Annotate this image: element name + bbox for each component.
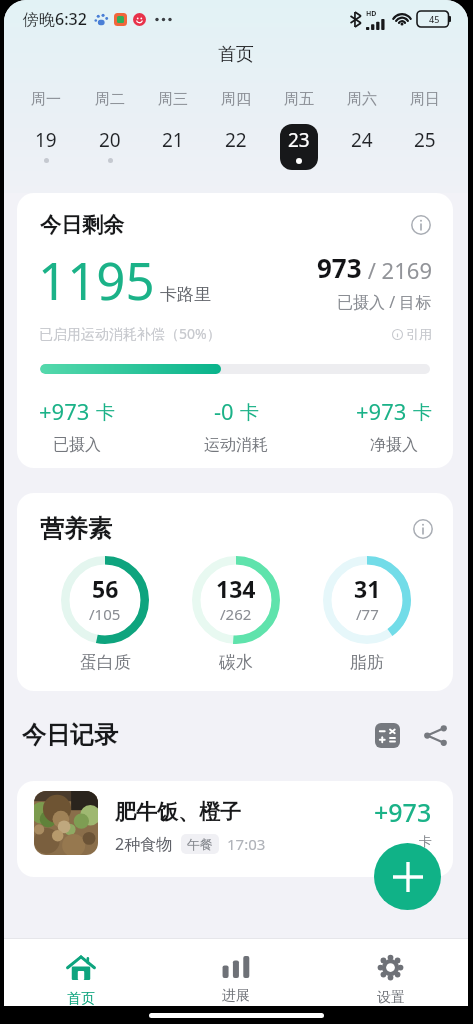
button[interactable]: 周六	[330, 90, 393, 170]
staticText: 周五	[284, 90, 314, 109]
button[interactable]: 今日剩余	[17, 193, 453, 468]
staticText: 引用	[406, 326, 432, 342]
button[interactable]: 设置	[313, 939, 468, 1006]
staticText: 设置	[377, 989, 405, 1006]
button[interactable]: 周二	[78, 90, 141, 170]
staticText: +973	[356, 396, 407, 426]
staticText: 973	[317, 250, 362, 285]
staticText: 56	[92, 573, 119, 604]
button[interactable]: 进展	[158, 939, 313, 1006]
staticText: 25	[414, 127, 436, 153]
staticText: 21	[162, 127, 184, 153]
staticText: 蛋白质	[80, 652, 131, 673]
staticText: 首页	[67, 990, 95, 1006]
button[interactable]: 说明	[410, 516, 436, 542]
staticText: 周六	[347, 90, 377, 109]
staticText: 卡路里	[160, 284, 211, 305]
staticText: 卡	[240, 401, 259, 425]
staticText: 2种食物	[115, 833, 173, 855]
staticText: 运动消耗	[204, 435, 268, 455]
staticText: HD	[366, 9, 377, 19]
staticText: 45	[429, 13, 440, 25]
staticText: 净摄入	[370, 435, 418, 455]
staticText: 周日	[410, 90, 440, 109]
staticText: /262	[220, 604, 252, 624]
staticText: 1195	[38, 245, 155, 314]
button[interactable]: 周一	[14, 90, 78, 170]
staticText: 24	[351, 127, 373, 153]
staticText: 已摄入 / 目标	[337, 291, 432, 313]
staticText: 进展	[222, 987, 250, 1005]
button[interactable]: 周日	[393, 90, 456, 170]
staticText: 周二	[95, 90, 125, 109]
button[interactable]: 添加记录	[374, 843, 441, 910]
button[interactable]: 分享	[415, 715, 455, 755]
staticText: 脂肪	[350, 652, 384, 673]
staticText: /77	[356, 604, 379, 624]
staticText: 肥牛饭、橙子	[115, 799, 241, 825]
staticText: 22	[225, 127, 247, 153]
staticText: 周三	[158, 90, 188, 109]
staticText: 今日剩余	[40, 212, 124, 238]
staticText: 19	[35, 127, 57, 153]
button[interactable]: 首页	[4, 939, 158, 1006]
staticText: 营养素	[40, 514, 112, 544]
staticText: 卡	[96, 401, 115, 425]
staticText: +973	[39, 396, 90, 426]
staticText: /105	[89, 604, 121, 624]
staticText: / 2169	[362, 255, 432, 285]
staticText: 碳水	[219, 652, 253, 673]
staticText: 卡	[413, 401, 432, 425]
staticText: 午餐	[187, 836, 213, 852]
staticText: 17:03	[227, 834, 266, 854]
button[interactable]: 说明	[408, 212, 434, 238]
staticText: 已摄入	[53, 435, 101, 455]
staticText: 首页	[218, 43, 254, 66]
staticText: 134	[216, 573, 256, 604]
button[interactable]: 周五	[267, 90, 330, 170]
staticText: 周一	[31, 90, 61, 109]
staticText: 31	[354, 573, 381, 604]
button[interactable]: 营养计算器	[367, 715, 407, 755]
button[interactable]: 周三	[141, 90, 204, 170]
button[interactable]: 肥牛饭、橙子	[17, 781, 453, 877]
staticText: 20	[99, 127, 121, 153]
staticText: 今日记录	[22, 720, 118, 750]
staticText: 已启用运动消耗补偿（50%）	[39, 324, 221, 343]
button[interactable]: 周四	[204, 90, 267, 170]
staticText: 傍晚6:32	[23, 8, 87, 30]
staticText: +973	[374, 795, 432, 829]
staticText: 卡	[419, 833, 432, 849]
button[interactable]: 营养素	[17, 493, 453, 691]
staticText: -0	[214, 396, 234, 426]
staticText: 23	[288, 127, 310, 153]
staticText: 周四	[221, 90, 251, 109]
